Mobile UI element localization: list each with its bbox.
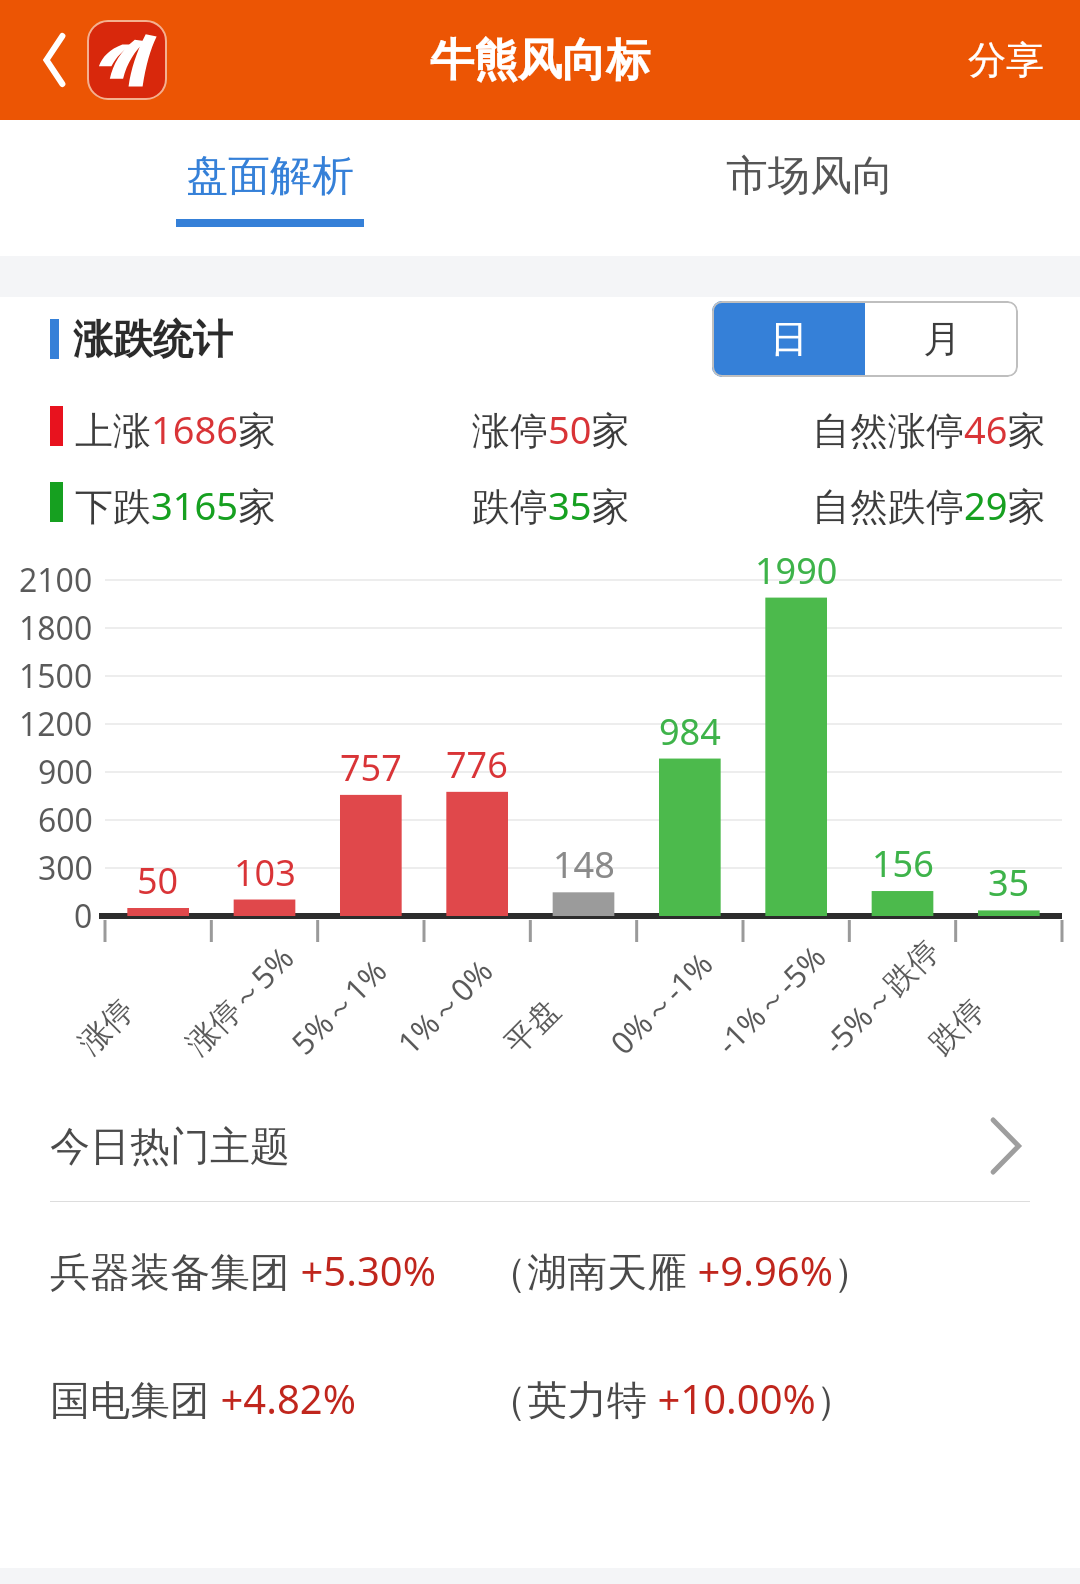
staticText: 月 xyxy=(923,315,961,363)
staticText: 50 xyxy=(137,856,179,905)
staticText: 0 xyxy=(74,894,93,938)
staticText: -5%～跌停 xyxy=(814,929,947,1063)
staticText: 600 xyxy=(38,798,93,842)
staticText: 103 xyxy=(234,848,296,897)
staticText: 上涨1686家 xyxy=(75,403,276,449)
staticText: 1500 xyxy=(19,654,93,698)
button[interactable]: 今日热门主题 xyxy=(0,1091,1080,1201)
button[interactable]: App logo xyxy=(88,21,166,99)
staticText: 国电集团 +4.82% xyxy=(50,1371,356,1426)
button[interactable]: Back xyxy=(18,25,88,95)
button[interactable]: 月 xyxy=(865,301,1018,377)
staticText: 自然涨停46家 xyxy=(812,403,1046,449)
staticText: 涨停～5% xyxy=(176,936,302,1063)
staticText: 跌停35家 xyxy=(472,479,630,525)
staticText: 5%～1% xyxy=(282,950,395,1063)
staticText: 1990 xyxy=(755,546,838,595)
staticText: 牛熊风向标 xyxy=(430,33,650,88)
staticText: 市场风向 xyxy=(726,150,894,203)
staticText: 平盘 xyxy=(496,991,568,1062)
staticText: 0%～-1% xyxy=(601,943,721,1063)
staticText: -1%～-5% xyxy=(707,936,834,1063)
staticText: 776 xyxy=(446,740,508,789)
staticText: 984 xyxy=(659,707,721,756)
staticText: 1%～0% xyxy=(388,950,501,1063)
staticText: 1800 xyxy=(19,606,93,650)
button[interactable]: 分享 xyxy=(932,16,1080,104)
staticText: 2100 xyxy=(19,558,93,602)
staticText: 涨停50家 xyxy=(472,403,630,449)
staticText: 35 xyxy=(988,858,1030,907)
staticText: 1200 xyxy=(19,702,93,746)
staticText: 分享 xyxy=(968,36,1044,84)
staticText: 今日热门主题 xyxy=(50,1121,290,1171)
staticText: 日 xyxy=(770,315,808,363)
staticText: 757 xyxy=(340,743,402,792)
staticText: 148 xyxy=(553,840,615,889)
button[interactable]: 日 xyxy=(712,301,865,377)
staticText: 自然跌停29家 xyxy=(812,479,1046,525)
staticText: 盘面解析 xyxy=(186,150,354,203)
button[interactable]: 盘面解析 xyxy=(0,120,540,256)
staticText: （英力特 +10.00%） xyxy=(487,1371,856,1426)
staticText: （湖南天雁 +9.96%） xyxy=(487,1243,873,1298)
staticText: 下跌3165家 xyxy=(75,479,276,525)
staticText: 跌停 xyxy=(921,991,993,1062)
staticText: 900 xyxy=(38,750,93,794)
staticText: 兵器装备集团 +5.30% xyxy=(50,1243,436,1298)
staticText: 涨跌统计 xyxy=(73,314,233,364)
staticText: 涨停 xyxy=(70,991,142,1062)
staticText: 300 xyxy=(38,846,93,890)
staticText: 156 xyxy=(872,839,934,888)
button[interactable]: 市场风向 xyxy=(540,120,1080,256)
